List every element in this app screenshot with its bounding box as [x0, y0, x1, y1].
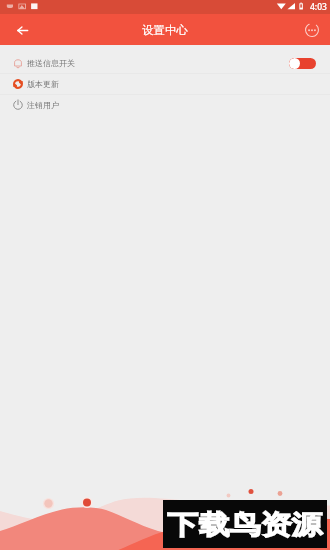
staticText: 推送信息开关 [27, 58, 75, 68]
button[interactable]: More options [300, 18, 324, 42]
button[interactable]: Push notification toggle [289, 58, 316, 69]
button[interactable]: 推送信息开关 [0, 53, 330, 73]
button[interactable]: 版本更新 [0, 74, 330, 94]
staticText: 下载鸟资源 [167, 508, 323, 541]
button[interactable]: Back [9, 17, 35, 43]
staticText: 4:03 [310, 1, 327, 13]
staticText: 版本更新 [27, 79, 59, 89]
button[interactable]: 注销用户 [0, 95, 330, 115]
staticText: 注销用户 [27, 100, 59, 110]
staticText: 设置中心 [142, 23, 188, 37]
